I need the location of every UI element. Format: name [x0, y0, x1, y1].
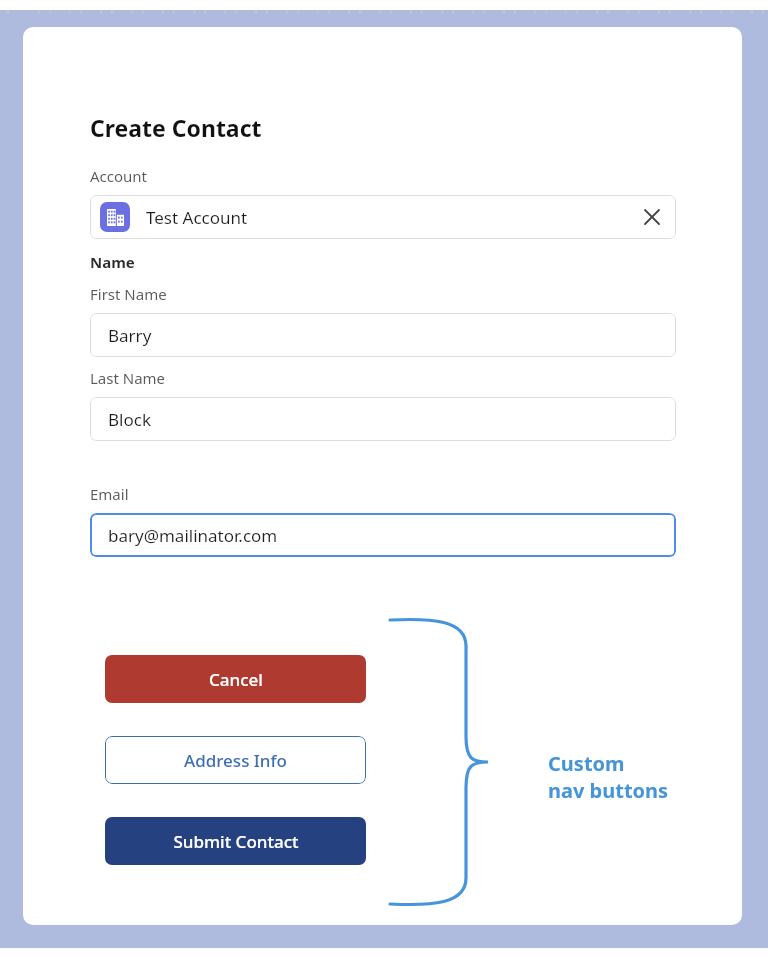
button[interactable]: Clear account: [638, 203, 666, 231]
staticText: Test Account: [146, 206, 248, 229]
staticText: Cancel: [209, 668, 263, 691]
staticText: bary@mailinator.com: [108, 524, 278, 547]
button[interactable]: bary@mailinator.com: [90, 513, 676, 557]
staticText: Create Contact: [90, 112, 262, 143]
button[interactable]: Address Info: [105, 736, 366, 784]
button[interactable]: Block: [90, 397, 676, 441]
staticText: nav buttons: [548, 777, 669, 804]
button[interactable]: Barry: [90, 313, 676, 357]
staticText: Barry: [108, 324, 152, 347]
staticText: Block: [108, 408, 151, 431]
staticText: Submit Contact: [173, 830, 299, 853]
button[interactable]: Test Account: [90, 195, 676, 239]
staticText: Custom: [548, 750, 625, 777]
staticText: Account: [90, 166, 148, 186]
staticText: First Name: [90, 284, 167, 304]
staticText: Email: [90, 484, 129, 504]
staticText: Address Info: [184, 749, 287, 772]
button[interactable]: Cancel: [105, 655, 366, 703]
button[interactable]: Submit Contact: [105, 817, 366, 865]
staticText: Last Name: [90, 368, 166, 388]
staticText: Name: [90, 252, 135, 272]
